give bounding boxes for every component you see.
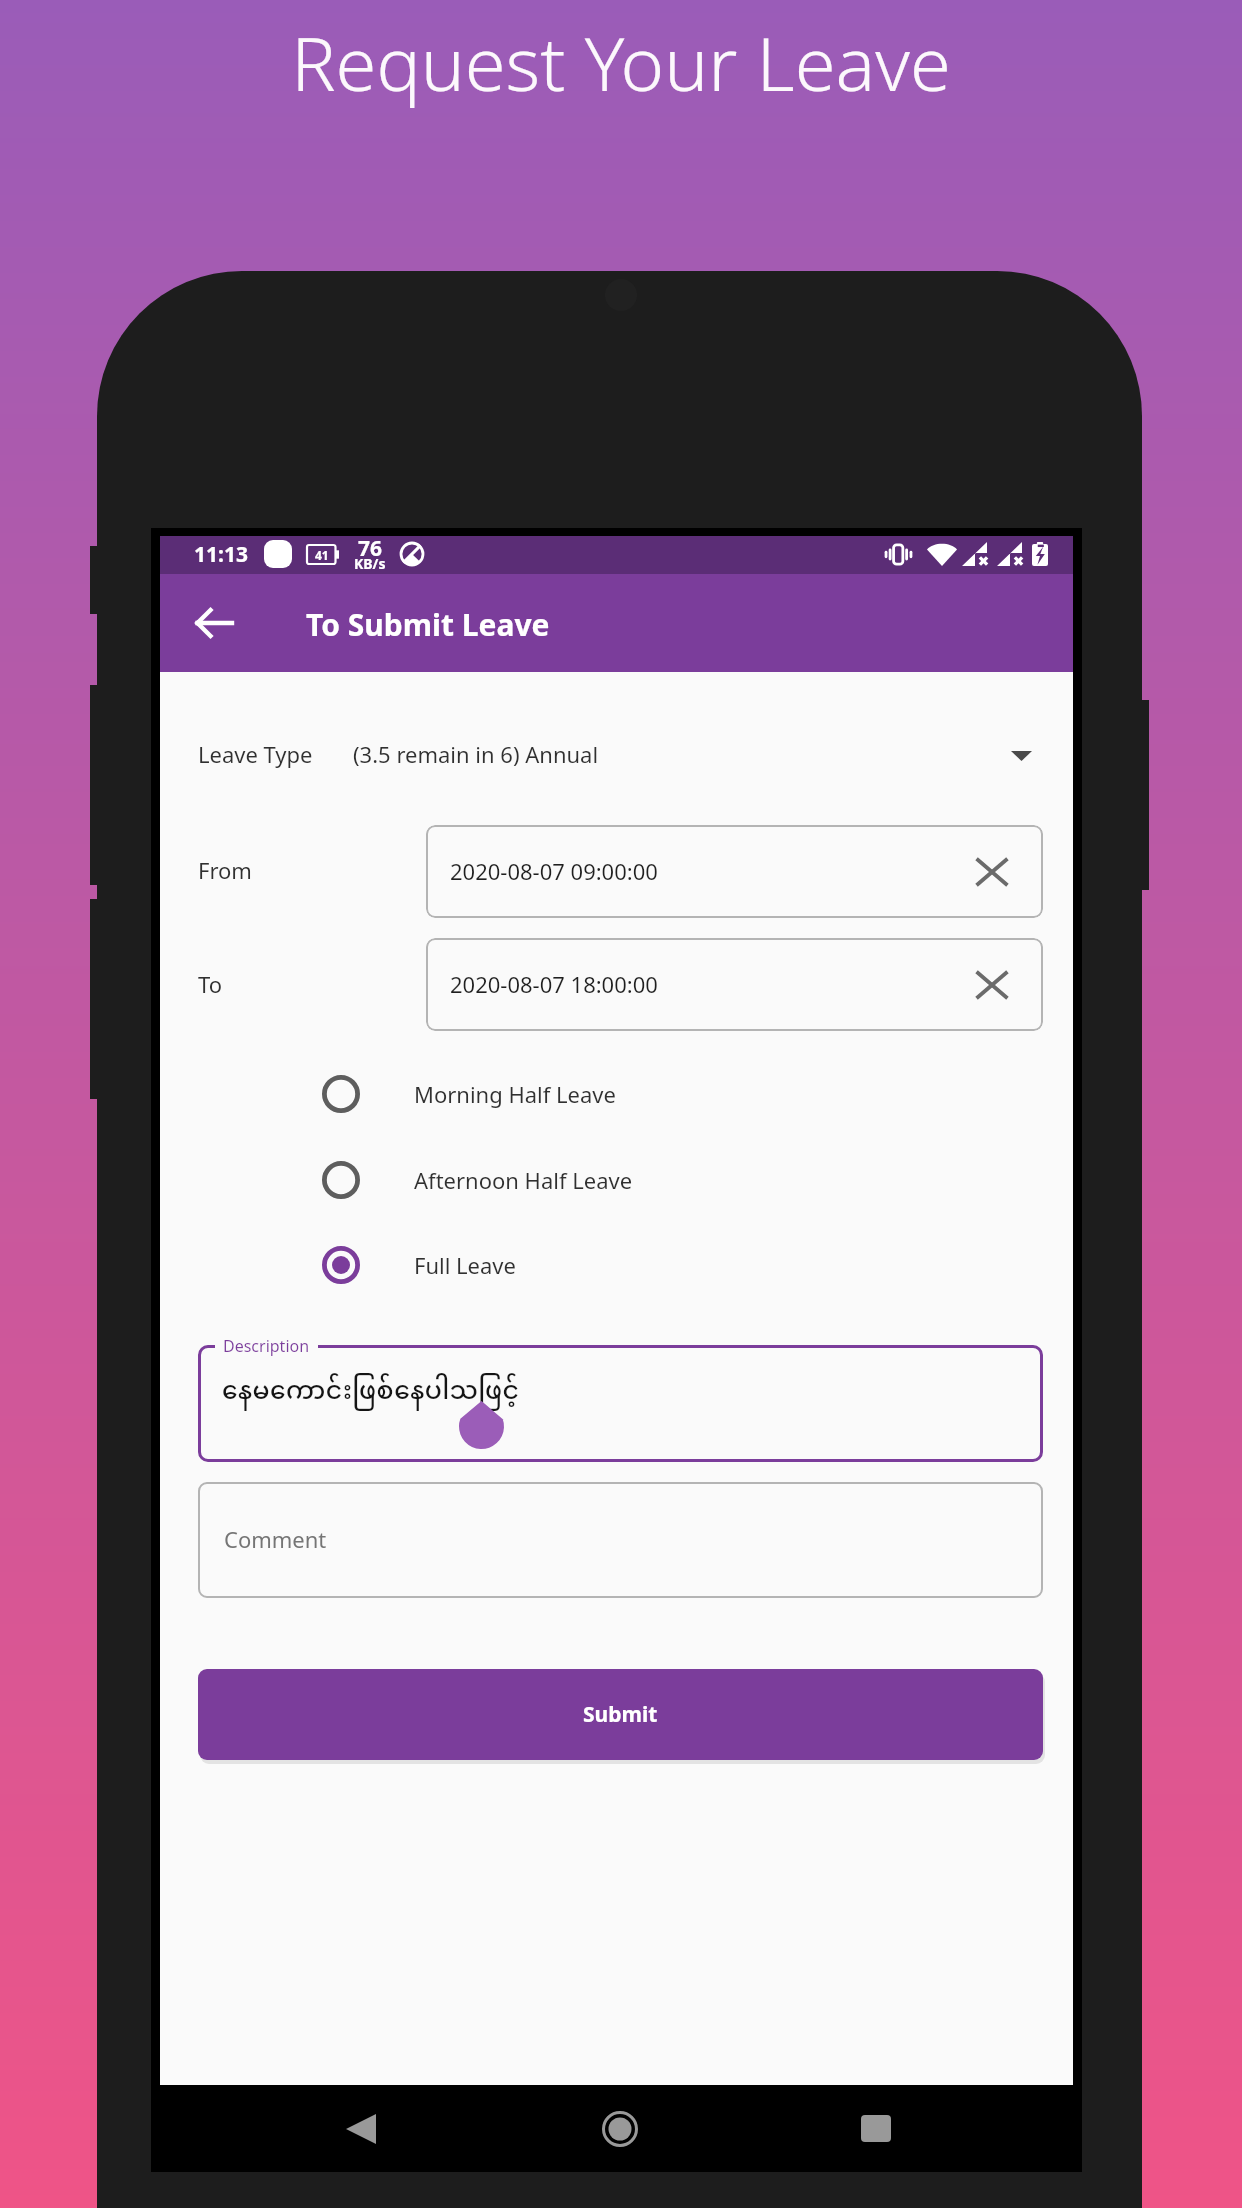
staticText: Request Your Leave <box>0 12 1242 113</box>
staticText: 2020-08-07 09:00:00 <box>450 856 658 886</box>
button[interactable]: Back <box>179 588 249 658</box>
staticText: Morning Half Leave <box>414 1079 616 1109</box>
staticText: KB/s <box>354 554 386 573</box>
button[interactable]: Leave Type <box>160 716 1073 792</box>
button[interactable]: Select leave type <box>994 727 1048 781</box>
button[interactable]: Recents <box>831 2085 921 2172</box>
staticText: Full Leave <box>414 1250 516 1280</box>
staticText: 76 <box>358 534 383 563</box>
button[interactable]: 2020-08-07 18:00:00 <box>426 938 1043 1031</box>
button[interactable]: 2020-08-07 09:00:00 <box>426 825 1043 918</box>
button[interactable]: Submit <box>198 1669 1043 1760</box>
staticText: Leave Type <box>198 739 313 769</box>
button[interactable]: Clear <box>969 962 1015 1008</box>
button[interactable] <box>198 1345 1043 1462</box>
staticText: 11:13 <box>194 540 248 569</box>
staticText: Afternoon Half Leave <box>414 1165 633 1195</box>
button[interactable]: Full Leave <box>160 1222 1073 1308</box>
staticText: From <box>198 855 252 885</box>
button[interactable]: Home <box>575 2085 665 2172</box>
staticText: To Submit Leave <box>306 604 550 645</box>
staticText: (3.5 remain in 6) Annual <box>353 739 599 769</box>
staticText: Description <box>223 1335 310 1357</box>
staticText: To <box>198 969 223 999</box>
staticText: Comment <box>224 1524 327 1554</box>
button[interactable]: Clear <box>969 849 1015 895</box>
button[interactable]: Afternoon Half Leave <box>160 1137 1073 1223</box>
staticText: နေမကောင်းဖြစ်နေပါသဖြင့် <box>222 1366 521 1421</box>
button[interactable]: Comment <box>198 1482 1043 1598</box>
staticText: 2020-08-07 18:00:00 <box>450 969 658 999</box>
button[interactable]: Morning Half Leave <box>160 1051 1073 1137</box>
staticText: Submit <box>583 1700 658 1729</box>
staticText: 41 <box>315 547 329 563</box>
button[interactable]: Back <box>316 2085 406 2172</box>
